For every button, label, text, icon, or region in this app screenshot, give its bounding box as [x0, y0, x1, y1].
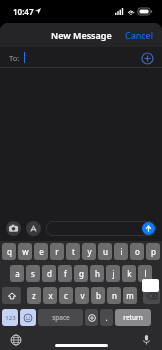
- staticText: f: [64, 268, 67, 279]
- button[interactable]: y: [82, 243, 96, 260]
- staticText: return: [123, 313, 143, 322]
- staticText: q: [7, 246, 12, 257]
- staticText: w: [22, 246, 29, 257]
- staticText: l: [144, 268, 147, 279]
- button[interactable]: i: [114, 243, 128, 260]
- button[interactable]: w: [18, 243, 32, 260]
- staticText: o: [135, 246, 140, 257]
- staticText: h: [95, 268, 100, 279]
- button[interactable]: q: [2, 243, 16, 260]
- staticText: y: [87, 246, 92, 257]
- button[interactable]: App Store: [26, 221, 41, 236]
- button[interactable]: Cancel: [117, 25, 162, 45]
- staticText: i: [120, 246, 123, 257]
- staticText: p: [151, 246, 156, 257]
- button[interactable]: c: [59, 287, 73, 304]
- staticText: b: [96, 290, 101, 301]
- button[interactable]: j: [106, 265, 120, 282]
- button[interactable]: At sign: [85, 309, 98, 326]
- staticText: e: [39, 246, 44, 257]
- button[interactable]: Delete: [143, 287, 160, 304]
- button[interactable]: space: [38, 309, 83, 326]
- staticText: Cancel: [125, 29, 154, 41]
- staticText: g: [79, 268, 84, 279]
- button[interactable]: b: [91, 287, 105, 304]
- staticText: 123: [5, 314, 16, 322]
- button[interactable]: o: [130, 243, 144, 260]
- staticText: x: [48, 290, 53, 301]
- button[interactable]: g: [74, 265, 88, 282]
- other: Send: [142, 222, 155, 235]
- button[interactable]: .: [100, 309, 113, 326]
- staticText: v: [80, 290, 85, 301]
- button[interactable]: m: [123, 287, 137, 304]
- button[interactable]: t: [66, 243, 80, 260]
- button[interactable]: h: [90, 265, 104, 282]
- staticText: s: [31, 268, 35, 279]
- button[interactable]: k: [122, 265, 136, 282]
- button[interactable]: 123: [2, 309, 18, 326]
- button[interactable]: z: [27, 287, 41, 304]
- staticText: .: [105, 312, 108, 323]
- staticText: t: [72, 246, 75, 257]
- staticText: z: [32, 290, 36, 301]
- button[interactable]: Send: [46, 221, 156, 236]
- staticText: j: [112, 268, 115, 279]
- button[interactable]: Dictate: [139, 333, 153, 347]
- staticText: u: [103, 246, 108, 257]
- staticText: 10:47: [13, 6, 34, 17]
- button[interactable]: d: [42, 265, 56, 282]
- button[interactable]: return: [115, 309, 151, 326]
- button[interactable]: v: [75, 287, 89, 304]
- button[interactable]: p: [146, 243, 160, 260]
- staticText: New Message: [51, 29, 112, 41]
- staticText: space: [52, 313, 70, 322]
- staticText: m: [126, 290, 134, 301]
- button[interactable]: n: [107, 287, 121, 304]
- staticText: r: [55, 246, 59, 257]
- staticText: a: [15, 268, 20, 279]
- button[interactable]: Emoji: [20, 309, 36, 326]
- button[interactable]: Camera: [6, 221, 21, 236]
- button[interactable]: r: [50, 243, 64, 260]
- button[interactable]: l: [138, 265, 152, 282]
- staticText: k: [127, 268, 132, 279]
- button[interactable]: e: [34, 243, 48, 260]
- button[interactable]: Add contact: [139, 50, 155, 66]
- staticText: c: [64, 290, 68, 301]
- staticText: n: [112, 290, 117, 301]
- button[interactable]: s: [26, 265, 40, 282]
- button[interactable]: u: [98, 243, 112, 260]
- staticText: d: [47, 268, 52, 279]
- button[interactable]: x: [43, 287, 57, 304]
- button[interactable]: a: [10, 265, 24, 282]
- button[interactable]: Shift: [2, 287, 21, 304]
- staticText: To:: [9, 53, 20, 63]
- button[interactable]: Change keyboard: [9, 333, 23, 347]
- button[interactable]: f: [58, 265, 72, 282]
